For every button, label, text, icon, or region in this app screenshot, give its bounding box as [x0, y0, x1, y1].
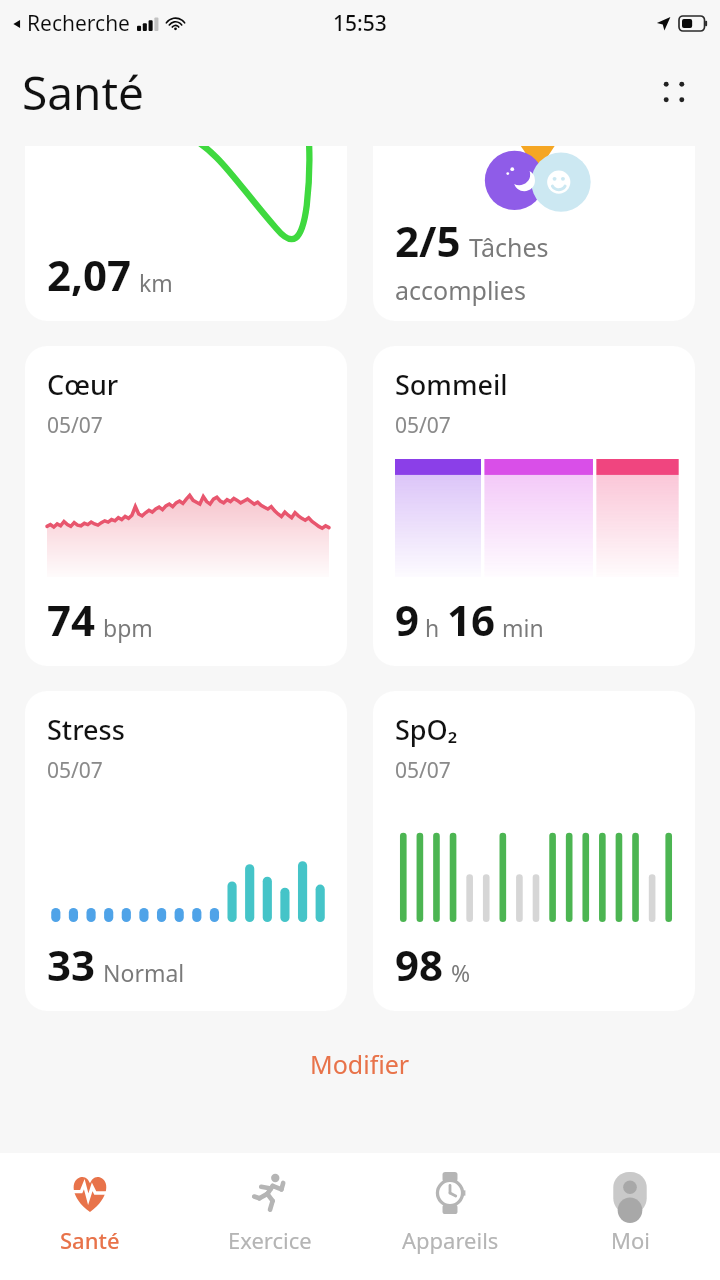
staticText: Tâches — [469, 230, 549, 264]
button[interactable]: Appareils — [360, 1153, 540, 1280]
staticText: 15:53 — [333, 9, 387, 38]
staticText: SpO₂ — [395, 711, 458, 748]
button[interactable]: Cœur — [25, 346, 347, 666]
staticText: 05/07 — [395, 411, 451, 440]
button[interactable]: SpO₂ — [373, 691, 695, 1011]
staticText: Santé — [22, 61, 145, 124]
staticText: Normal — [103, 957, 185, 988]
button[interactable]: Sommeil — [373, 346, 695, 666]
staticText: Appareils — [402, 1225, 499, 1255]
button[interactable]: Modifier — [25, 1041, 695, 1087]
staticText: 74 — [47, 591, 96, 648]
staticText: 9 — [395, 591, 420, 648]
button[interactable]: More options — [648, 66, 700, 118]
staticText: 98 — [395, 936, 444, 993]
button[interactable]: Santé — [0, 1153, 180, 1280]
staticText: Exercice — [228, 1225, 312, 1255]
button[interactable]: Stress — [25, 691, 347, 1011]
button[interactable]: Moi — [540, 1153, 720, 1280]
button[interactable]: Exercice — [180, 1153, 360, 1280]
staticText: Recherche — [27, 9, 130, 38]
staticText: Santé — [60, 1225, 120, 1255]
button[interactable]: 2,07 — [25, 146, 347, 321]
staticText: % — [451, 957, 471, 988]
staticText: Modifier — [310, 1047, 410, 1081]
staticText: 2,07 — [47, 246, 132, 303]
staticText: Sommeil — [395, 366, 508, 403]
button[interactable]: 2/5 — [373, 146, 695, 321]
staticText: 2/5 — [395, 212, 461, 269]
staticText: 16 — [447, 591, 496, 648]
staticText: accomplies — [395, 273, 526, 307]
staticText: 05/07 — [47, 411, 103, 440]
staticText: 33 — [47, 936, 96, 993]
staticText: Cœur — [47, 366, 119, 403]
staticText: Stress — [47, 711, 125, 748]
staticText: Moi — [611, 1225, 650, 1255]
staticText: h — [425, 612, 440, 643]
staticText: bpm — [103, 612, 153, 643]
staticText: min — [502, 612, 544, 643]
staticText: km — [139, 267, 173, 298]
staticText: 05/07 — [395, 756, 451, 785]
staticText: 05/07 — [47, 756, 103, 785]
